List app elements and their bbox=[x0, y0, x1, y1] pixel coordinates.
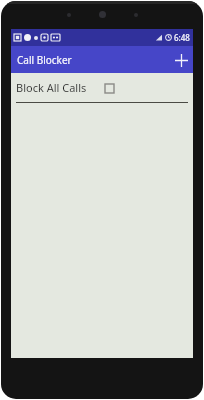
staticText: Block All Calls bbox=[16, 80, 87, 95]
button[interactable]: Add blocked number bbox=[169, 48, 193, 72]
button[interactable]: Block All Calls checkbox bbox=[101, 80, 117, 96]
staticText: Call Blocker bbox=[17, 53, 72, 67]
staticText: 6:48 bbox=[174, 32, 190, 43]
button[interactable]: Block All Calls bbox=[11, 73, 193, 102]
